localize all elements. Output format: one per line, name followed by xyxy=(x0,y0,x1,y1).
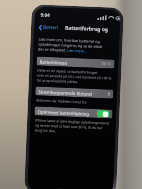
button[interactable]: Tilbage til Batteri xyxy=(38,22,60,32)
staticText: Læs mere om, hvordan batteriet og xyxy=(38,36,101,44)
button[interactable]: Strømbesparende tilstand xyxy=(35,86,113,99)
staticText: over en periode på 24 t. Lad batteriet n… xyxy=(37,72,112,80)
staticText: Batteriforbrug og -opladning xyxy=(65,25,116,34)
button[interactable]: Optimeret batteriladning xyxy=(34,106,113,119)
button[interactable]: Optimeret batteriladning til/fra xyxy=(96,110,110,117)
staticText: Optimeret batteriladning xyxy=(37,108,90,117)
button[interactable]: Batteriniveau xyxy=(36,56,115,69)
staticText: Batteriniveau xyxy=(39,58,68,66)
staticText: iPhone lærer af dine daglige opladningsr… xyxy=(35,117,110,125)
staticText: brug for den. xyxy=(35,127,57,133)
staticText: Aktiveres når mobilen i laver fra strøms… xyxy=(36,97,112,106)
staticText: Strømbesparende tilstand xyxy=(38,88,92,97)
staticText: der er tilknyttet. xyxy=(38,46,67,53)
staticText: for at opnå bedste ydelse. xyxy=(37,77,79,84)
staticText: 9:04 xyxy=(40,11,51,18)
staticText: opladningen fungerer, og se de vilkår xyxy=(38,41,103,49)
button[interactable]: Læs mere… xyxy=(67,48,87,53)
staticText: og venter med at lade over 80 %, til du … xyxy=(35,122,103,130)
staticText: Batteri xyxy=(43,24,59,31)
staticText: 88 % xyxy=(101,61,112,67)
staticText: Dette er en vejled. se batteriforbruget xyxy=(37,67,98,75)
